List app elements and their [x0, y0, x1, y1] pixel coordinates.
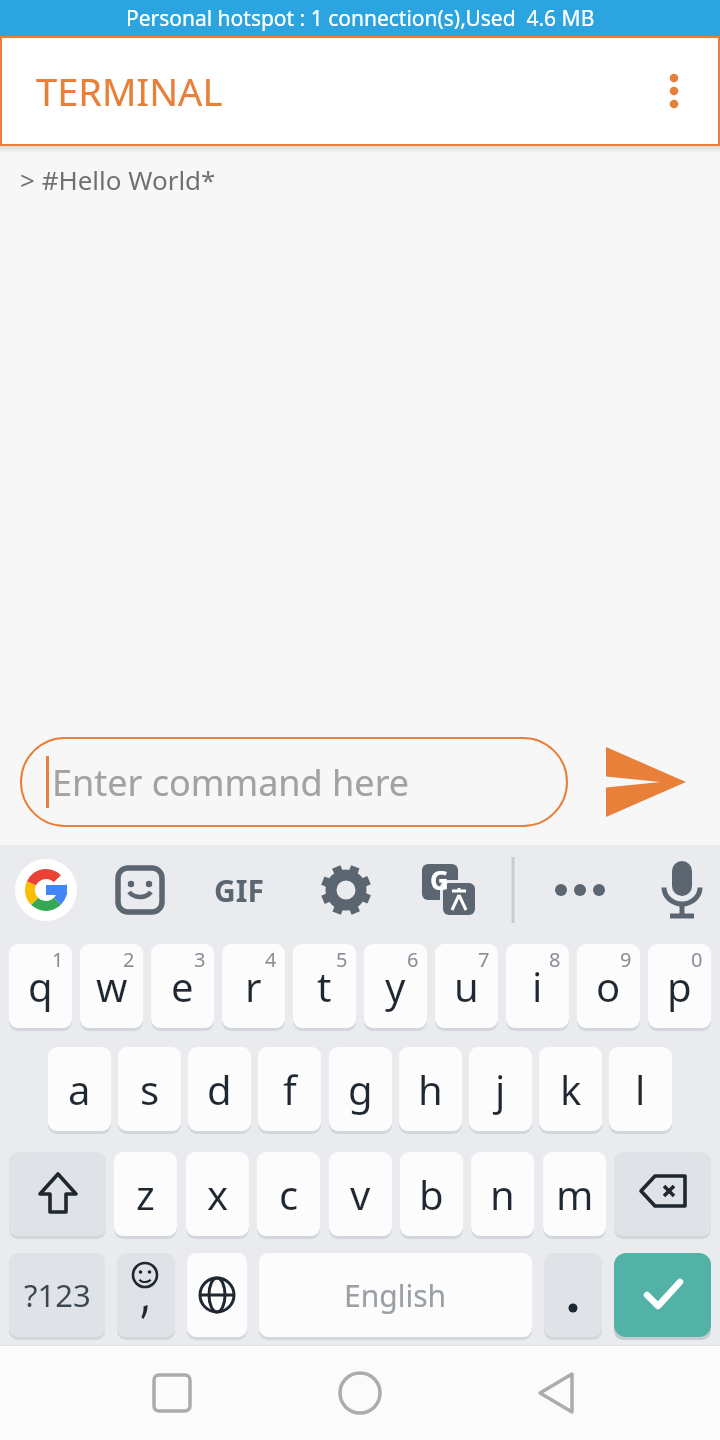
button[interactable] [308, 845, 411, 935]
button[interactable]: f [258, 1047, 321, 1131]
staticText: 6 [407, 946, 419, 973]
button[interactable] [0, 845, 102, 935]
button[interactable] [617, 845, 720, 935]
staticText: G [430, 862, 449, 897]
staticText: n [490, 1167, 515, 1221]
staticText: l [635, 1062, 646, 1116]
staticText: q [28, 959, 53, 1013]
button[interactable] [9, 1152, 106, 1236]
staticText: a [68, 1062, 91, 1116]
staticText: e [171, 959, 194, 1013]
button[interactable] [0, 1345, 240, 1440]
button[interactable]: v [329, 1152, 392, 1236]
button[interactable]: l [609, 1047, 672, 1131]
button[interactable] [480, 1345, 720, 1440]
staticText: 3 [194, 946, 206, 973]
button[interactable] [187, 1253, 247, 1337]
button[interactable] [614, 1253, 711, 1337]
button[interactable]: m [543, 1152, 606, 1236]
staticText: v [350, 1167, 371, 1221]
staticText: s [140, 1062, 160, 1116]
button[interactable] [514, 845, 617, 935]
button[interactable] [240, 1345, 480, 1440]
button[interactable]: Enter command here [20, 737, 568, 827]
button[interactable] [544, 1253, 602, 1337]
staticText: i [532, 959, 543, 1013]
staticText: c [279, 1167, 299, 1221]
button[interactable] [205, 845, 308, 935]
button[interactable]: n [471, 1152, 534, 1236]
staticText: GIF [214, 870, 264, 911]
staticText: ?123 [24, 1274, 91, 1316]
staticText: 0 [691, 946, 703, 973]
staticText: z [136, 1167, 155, 1221]
staticText: h [418, 1062, 443, 1116]
staticText: t [317, 959, 332, 1013]
staticText: y [385, 959, 406, 1013]
staticText: Enter command here [52, 758, 410, 807]
staticText: x [207, 1167, 229, 1221]
button[interactable]: i [506, 944, 569, 1028]
staticText: 9 [620, 946, 632, 973]
button[interactable]: y [364, 944, 427, 1028]
staticText: 2 [123, 946, 135, 973]
staticText: 5 [336, 946, 348, 973]
button[interactable]: ?123 [9, 1253, 105, 1337]
staticText: o [596, 959, 621, 1013]
button[interactable]: z [114, 1152, 177, 1236]
button[interactable] [614, 1152, 711, 1236]
staticText: u [454, 959, 479, 1013]
staticText: g [348, 1062, 373, 1116]
button[interactable] [606, 747, 686, 817]
button[interactable]: p [648, 944, 711, 1028]
button[interactable]: j [469, 1047, 532, 1131]
staticText: k [560, 1062, 582, 1116]
button[interactable] [102, 845, 205, 935]
button[interactable]: q [9, 944, 72, 1028]
staticText: 7 [478, 946, 490, 973]
button[interactable]: English [259, 1253, 532, 1337]
staticText: j [495, 1062, 506, 1116]
staticText: d [207, 1062, 232, 1116]
button[interactable]: h [399, 1047, 462, 1131]
button[interactable] [411, 845, 514, 935]
button[interactable]: x [186, 1152, 249, 1236]
staticText: Personal hotspot : 1 connection(s),Used … [126, 4, 595, 33]
button[interactable]: w [80, 944, 143, 1028]
staticText: TERMINAL [36, 65, 223, 117]
staticText: b [419, 1167, 444, 1221]
staticText: r [245, 959, 262, 1013]
button[interactable]: e [151, 944, 214, 1028]
staticText: m [556, 1167, 594, 1221]
button[interactable]: b [400, 1152, 463, 1236]
button[interactable]: g [329, 1047, 392, 1131]
staticText: f [283, 1062, 297, 1116]
staticText: w [96, 959, 128, 1013]
button[interactable]: s [118, 1047, 181, 1131]
button[interactable]: k [539, 1047, 602, 1131]
button[interactable]: o [577, 944, 640, 1028]
button[interactable]: t [293, 944, 356, 1028]
button[interactable]: u [435, 944, 498, 1028]
button[interactable]: a [48, 1047, 111, 1131]
button[interactable]: r [222, 944, 285, 1028]
button[interactable] [652, 69, 696, 113]
button[interactable]: c [257, 1152, 320, 1236]
button[interactable] [117, 1253, 175, 1337]
staticText: 8 [549, 946, 561, 973]
button[interactable]: d [188, 1047, 251, 1131]
staticText: English [344, 1275, 447, 1316]
staticText: p [667, 959, 692, 1013]
staticText: 4 [265, 946, 277, 973]
staticText: 1 [52, 946, 64, 973]
staticText: > #Hello World* [20, 162, 216, 197]
